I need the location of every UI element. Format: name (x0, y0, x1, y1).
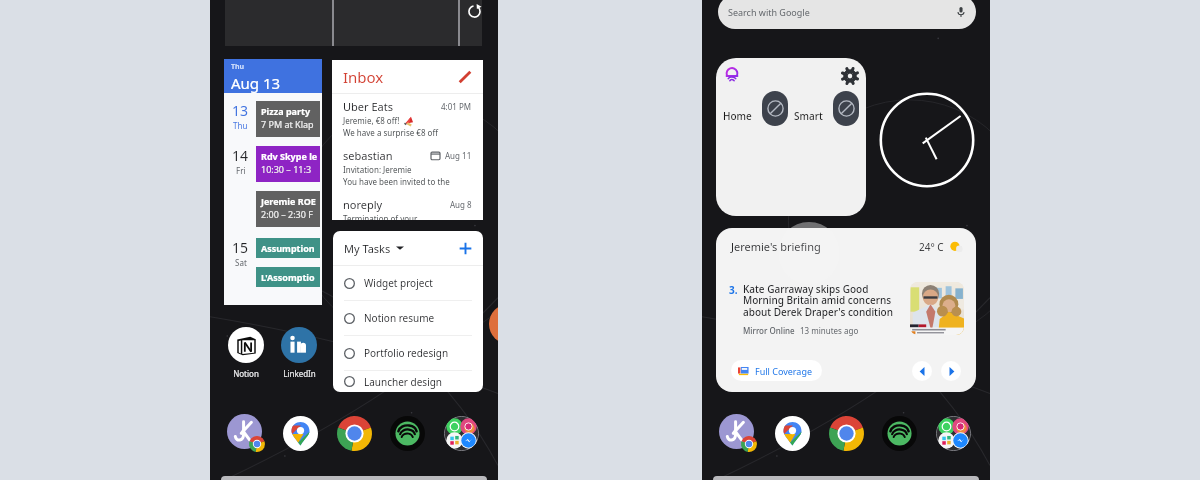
staticText: 24° C (919, 240, 944, 254)
other: Refresh (467, 4, 482, 19)
button[interactable]: Inbox (332, 60, 483, 220)
staticText: Mirror Online (743, 325, 795, 336)
button[interactable]: LinkedIn (274, 327, 324, 379)
button[interactable]: noreply (343, 197, 472, 220)
staticText: 13 (232, 101, 249, 120)
staticText: Thu (233, 120, 248, 131)
button[interactable]: Uber Eats (343, 99, 472, 138)
button[interactable]: Widget project (344, 266, 472, 300)
button[interactable]: Kustom (225, 412, 267, 454)
staticText: sebastian (343, 148, 393, 163)
button[interactable]: Thu (224, 59, 322, 305)
button[interactable]: Search with Google (728, 0, 967, 29)
staticText: Jeremie, €8 off! (343, 115, 400, 126)
staticText: Full Coverage (755, 365, 813, 377)
button[interactable]: Full Coverage (738, 360, 813, 381)
button[interactable]: Previous story (912, 361, 932, 381)
staticText: Jeremie ROE (261, 195, 316, 207)
button[interactable]: Settings (716, 58, 866, 216)
staticText: Fri (236, 165, 246, 176)
staticText: My Tasks (344, 241, 391, 256)
button[interactable]: Launcher design (344, 371, 472, 392)
staticText: 7 PM at Klap (261, 118, 314, 130)
other: Clock (879, 92, 975, 188)
staticText: Notion (233, 368, 259, 379)
other: Add task (459, 242, 472, 255)
staticText: Uber Eats (343, 99, 393, 114)
staticText: L'Assomption (261, 271, 320, 283)
staticText: Notion resume (364, 311, 435, 325)
button[interactable]: Rdv Skype le (261, 150, 320, 182)
staticText: noreply (343, 197, 383, 212)
button[interactable]: Kustom (717, 412, 759, 454)
button[interactable]: Notion resume (344, 301, 472, 335)
staticText: Portfolio redesign (364, 346, 449, 360)
button[interactable]: Spotify (386, 412, 428, 454)
staticText: Invitation: Jeremie (343, 164, 412, 175)
other: Voice search (955, 6, 967, 18)
button[interactable]: Next story (941, 361, 961, 381)
staticText: 2:00 – 2:30 F (261, 208, 313, 220)
staticText: Smart (794, 109, 823, 123)
staticText: Aug 11 (445, 150, 472, 161)
button[interactable]: L'Assomption (261, 267, 320, 287)
staticText: LinkedIn (283, 368, 316, 379)
button[interactable]: Chrome (825, 412, 867, 454)
staticText: Inbox (343, 67, 384, 87)
staticText: We have a surprise €8 off (343, 127, 438, 138)
staticText: Pizza party (261, 105, 311, 117)
staticText: Aug 8 (450, 199, 472, 210)
staticText: Thu (231, 62, 245, 72)
staticText: Kate Garraway skips Good Morning Britain… (743, 282, 901, 319)
button[interactable]: Pizza party (261, 105, 320, 137)
button[interactable]: Social folder (932, 412, 974, 454)
staticText: Assumption (261, 242, 315, 254)
staticText: Jeremie's briefing (731, 239, 821, 254)
staticText: Aug 13 (231, 73, 281, 93)
other: Compose (458, 70, 472, 84)
button[interactable]: Device off (833, 91, 859, 126)
staticText: Home (723, 109, 752, 123)
staticText: 14 (232, 146, 249, 165)
button[interactable]: Assumption (261, 238, 320, 258)
staticText: 4:01 PM (441, 101, 472, 112)
staticText: Launcher design (364, 375, 443, 389)
button[interactable]: Device off (762, 91, 788, 126)
staticText: 10:30 – 11:3 (261, 163, 312, 175)
staticText: 15 (232, 238, 249, 257)
button[interactable]: Maps (771, 412, 813, 454)
button[interactable]: Spotify (878, 412, 920, 454)
button[interactable]: sebastian (343, 148, 472, 187)
staticText: Rdv Skype le (261, 150, 318, 162)
staticText: Sat (235, 257, 247, 268)
staticText: Widget project (364, 276, 433, 290)
button[interactable]: Notion (221, 327, 271, 379)
other: Settings (841, 67, 859, 85)
button[interactable]: My Tasks (333, 231, 483, 392)
button[interactable]: Jeremie ROE (261, 195, 320, 227)
staticText: Termination of your (343, 213, 418, 220)
button[interactable]: Refresh (225, 0, 482, 46)
staticText: You have been invited to the (343, 176, 450, 187)
staticText: 13 minutes ago (800, 325, 859, 336)
button[interactable]: Jeremie's briefing (716, 228, 976, 392)
button[interactable]: Social folder (440, 412, 482, 454)
staticText: Search with Google (728, 6, 810, 18)
button[interactable]: Chrome (333, 412, 375, 454)
staticText: 3. (729, 283, 738, 297)
button[interactable]: Portfolio redesign (344, 336, 472, 370)
button[interactable]: Maps (279, 412, 321, 454)
